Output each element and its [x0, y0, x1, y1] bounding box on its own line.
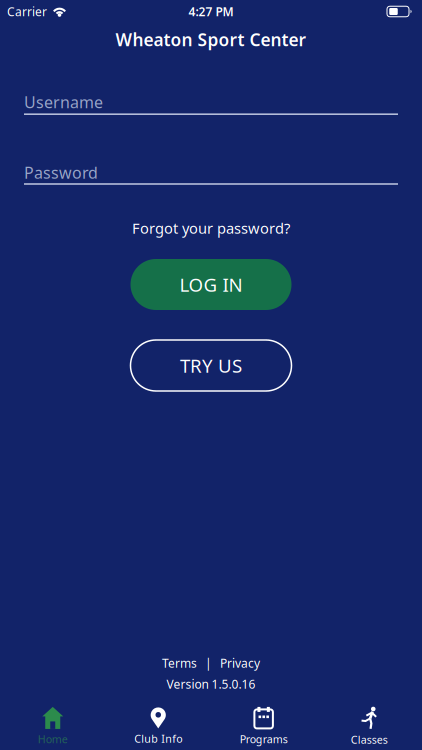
staticText: LOG IN: [179, 272, 242, 297]
staticText: Privacy: [220, 655, 260, 671]
staticText: 4:27 PM: [188, 3, 233, 19]
staticText: Home: [38, 732, 68, 746]
staticText: Carrier: [7, 3, 47, 19]
staticText: Terms: [162, 655, 197, 671]
staticText: Password: [24, 162, 98, 183]
staticText: Username: [24, 91, 103, 113]
staticText: Wheaton Sport Center: [115, 28, 306, 51]
staticText: |: [205, 655, 212, 671]
staticText: Club Info: [134, 731, 182, 746]
staticText: Version 1.5.0.16: [166, 676, 255, 692]
staticText: Classes: [351, 732, 388, 747]
staticText: Forgot your password?: [132, 218, 290, 238]
staticText: Programs: [240, 732, 288, 746]
staticText: TRY US: [180, 353, 242, 378]
